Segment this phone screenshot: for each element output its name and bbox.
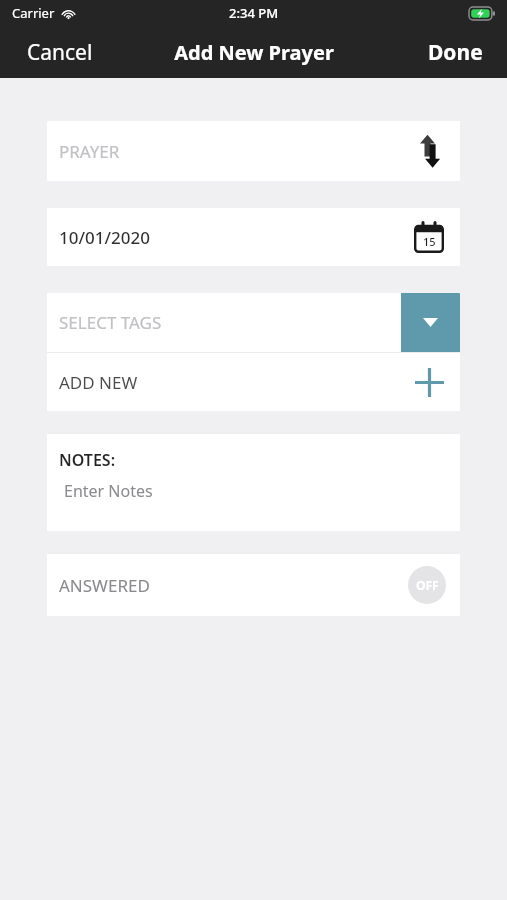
staticText: 15: [423, 234, 436, 249]
staticText: SELECT TAGS: [59, 311, 162, 334]
staticText: Add New Prayer: [174, 39, 334, 66]
staticText: ANSWERED: [59, 574, 150, 597]
button[interactable]: SELECT TAGS: [47, 293, 460, 352]
staticText: OFF: [416, 577, 439, 593]
staticText: Done: [428, 38, 483, 67]
staticText: 10/01/2020: [59, 226, 150, 249]
other: Pick date: [412, 220, 446, 254]
button[interactable]: Answered toggle, off: [408, 566, 446, 604]
staticText: PRAYER: [59, 140, 120, 163]
button[interactable]: Cancel: [0, 26, 120, 78]
button[interactable]: 10/01/2020: [47, 208, 460, 266]
staticText: Cancel: [27, 38, 93, 67]
button[interactable]: PRAYER: [47, 121, 460, 181]
button[interactable]: NOTES:: [47, 434, 460, 531]
button[interactable]: Done: [404, 26, 507, 78]
staticText: Enter Notes: [64, 480, 153, 502]
other: Sort prayers: [412, 134, 446, 168]
button[interactable]: ADD NEW: [47, 353, 460, 411]
staticText: 2:34 PM: [229, 4, 279, 22]
button[interactable]: ANSWERED: [47, 554, 460, 616]
staticText: Carrier: [12, 4, 55, 22]
staticText: NOTES:: [59, 449, 116, 471]
button[interactable]: Open tag list: [401, 293, 460, 352]
staticText: ADD NEW: [59, 371, 138, 394]
other: Add new tag: [412, 365, 446, 399]
